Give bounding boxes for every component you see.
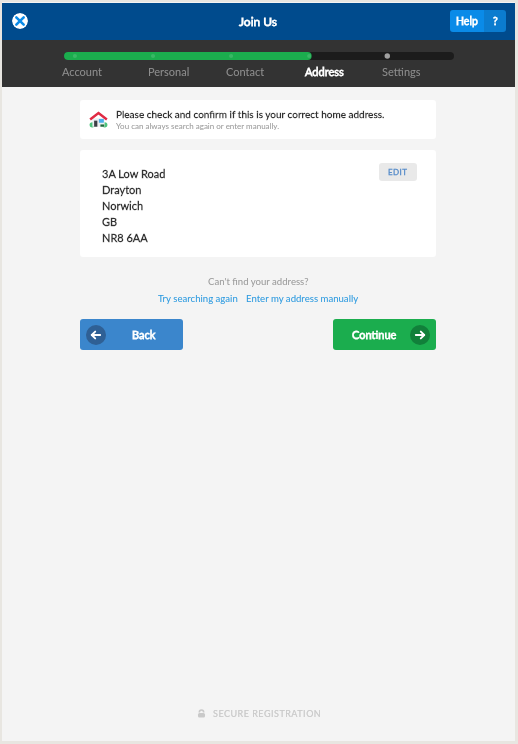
staticText: Help [456,15,478,28]
button[interactable]: Back [80,319,183,350]
button[interactable]: Contact [205,63,285,80]
button[interactable]: Help [484,10,506,32]
button[interactable]: EDIT [379,163,417,181]
staticText: Can't find your address? [208,276,309,288]
staticText: GB [102,215,118,228]
staticText: 3A Low Road [102,167,166,180]
staticText: EDIT [388,167,408,177]
staticText: You can always search again or enter man… [116,121,280,131]
button[interactable]: Try searching again [158,293,238,305]
button[interactable]: Help [450,10,484,32]
staticText: Join Us [239,14,278,28]
staticText: Norwich [102,199,144,212]
staticText: Drayton [102,183,142,196]
staticText: Please check and confirm if this is your… [116,108,385,120]
staticText: NR8 6AA [102,231,148,244]
staticText: Settings [382,65,421,78]
staticText: Address [305,65,344,78]
staticText: SECURE REGISTRATION [213,708,322,719]
staticText: ? [493,15,498,28]
staticText: Contact [226,65,265,78]
button[interactable]: Personal [129,63,209,80]
button[interactable]: Settings [361,63,441,80]
staticText: Account [62,65,102,78]
staticText: Continue [352,328,397,341]
button[interactable]: Account [42,63,122,80]
button[interactable]: Address [284,63,364,80]
staticText: Personal [148,65,190,78]
staticText: Back [132,328,156,341]
button[interactable]: Close [12,13,28,29]
button[interactable]: Continue [333,319,436,350]
button[interactable]: Enter my address manually [246,293,359,305]
